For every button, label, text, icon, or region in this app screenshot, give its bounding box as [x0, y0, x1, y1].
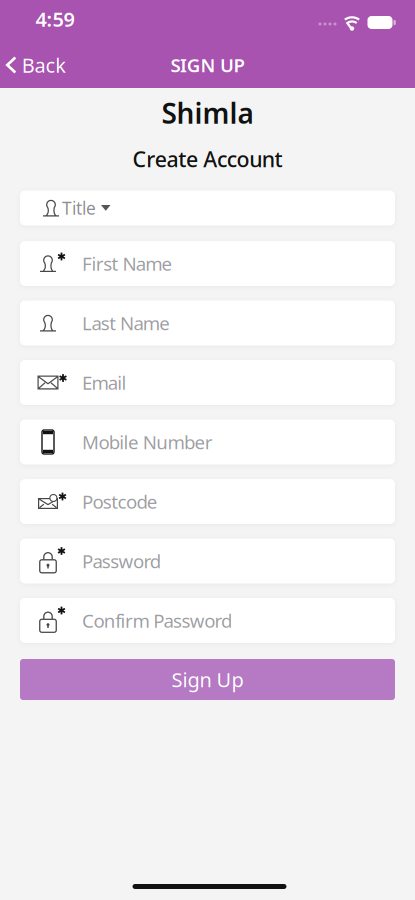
staticText: Shimla — [161, 94, 253, 132]
staticText: Back — [22, 52, 66, 78]
button[interactable]: Mobile Number — [20, 419, 395, 464]
staticText: Mobile Number — [82, 430, 213, 454]
staticText: SIGN UP — [170, 53, 245, 77]
staticText: Title — [62, 196, 96, 219]
staticText: Confirm Password — [82, 608, 232, 633]
button[interactable]: Back — [6, 43, 66, 87]
staticText: Postcode — [82, 489, 158, 514]
button[interactable]: First Name — [20, 241, 395, 286]
staticText: Create Account — [132, 145, 282, 173]
button[interactable]: Postcode — [20, 479, 395, 524]
staticText: 4:59 — [35, 6, 74, 32]
staticText: Email — [82, 370, 127, 395]
button[interactable]: Sign Up — [20, 659, 395, 700]
staticText: First Name — [82, 251, 173, 276]
staticText: Sign Up — [171, 666, 243, 693]
staticText: Last Name — [82, 311, 170, 335]
button[interactable]: Confirm Password — [20, 598, 395, 643]
button[interactable]: Title — [20, 190, 395, 225]
button[interactable]: Email — [20, 360, 395, 405]
button[interactable]: Last Name — [20, 300, 395, 345]
staticText: Password — [82, 549, 161, 573]
button[interactable]: Password — [20, 538, 395, 583]
